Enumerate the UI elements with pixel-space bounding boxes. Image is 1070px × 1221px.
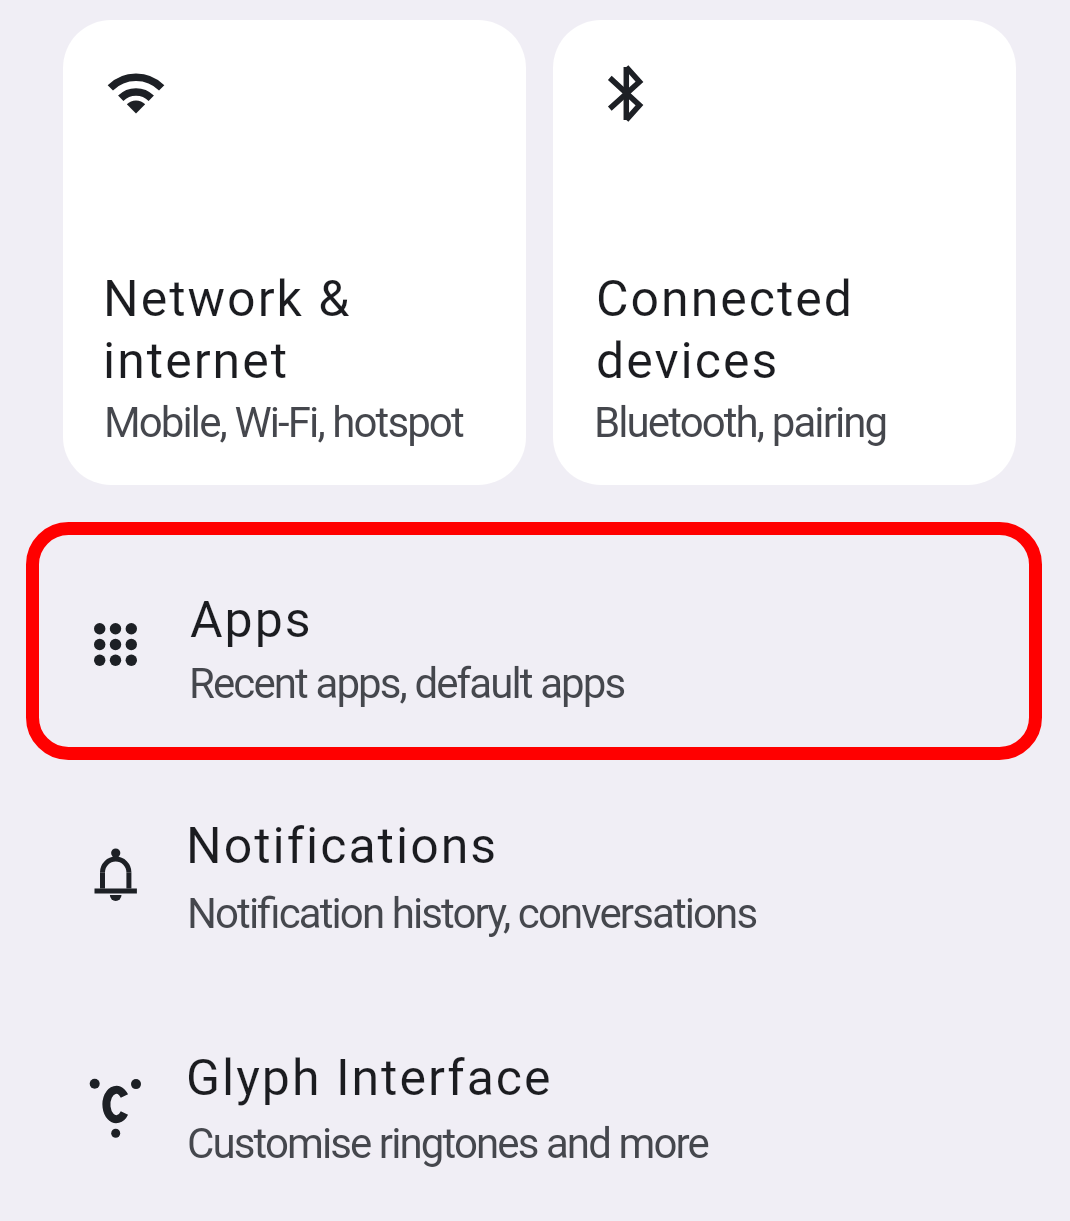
staticText: Bluetooth, pairing: [594, 398, 887, 447]
staticText: Mobile, Wi-Fi, hotspot: [104, 398, 463, 447]
button[interactable]: Apps: [0, 529, 1070, 760]
button[interactable]: Network & internet: [63, 20, 526, 485]
staticText: Connected devices: [596, 270, 855, 390]
button[interactable]: Connected devices: [553, 20, 1016, 485]
staticText: Apps: [190, 591, 313, 650]
staticText: Recent apps, default apps: [189, 659, 625, 708]
staticText: Customise ringtones and more: [187, 1119, 708, 1168]
button[interactable]: Notifications: [0, 760, 1070, 991]
staticText: Network & internet: [103, 270, 352, 390]
staticText: Notification history, conversations: [187, 889, 757, 938]
button[interactable]: Glyph Interface: [0, 991, 1070, 1221]
staticText: Glyph Interface: [186, 1049, 553, 1108]
staticText: Notifications: [186, 817, 499, 876]
